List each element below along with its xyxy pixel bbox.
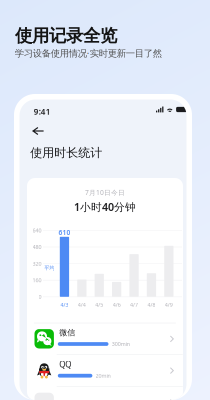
staticText: 160 bbox=[32, 277, 41, 284]
staticText: 610 bbox=[58, 228, 70, 237]
staticText: 4/6 bbox=[113, 301, 121, 308]
staticText: 学习设备使用情况·实时更新一目了然 bbox=[15, 47, 162, 59]
staticText: 4/8 bbox=[147, 301, 155, 308]
staticText: 4/5 bbox=[95, 301, 103, 308]
staticText: 使用记录全览 bbox=[15, 25, 117, 46]
button[interactable]: 返回 bbox=[27, 122, 49, 140]
staticText: 4/7 bbox=[130, 301, 138, 308]
staticText: 7月10日今日 bbox=[85, 188, 125, 197]
staticText: QQ bbox=[59, 359, 71, 370]
button[interactable] bbox=[27, 387, 183, 400]
staticText: 320 bbox=[32, 260, 41, 267]
button[interactable]: 微信 bbox=[27, 323, 183, 355]
staticText: 4/4 bbox=[78, 301, 86, 308]
staticText: 300min bbox=[112, 340, 130, 347]
staticText: 640 bbox=[32, 227, 41, 234]
button[interactable]: QQ bbox=[27, 355, 183, 386]
staticText: 4/3 bbox=[60, 301, 68, 308]
staticText: 微信 bbox=[59, 328, 75, 337]
staticText: 480 bbox=[32, 243, 41, 251]
staticText: 20min bbox=[96, 372, 111, 379]
staticText: 0 bbox=[38, 293, 41, 300]
staticText: 1小时40分钟 bbox=[74, 200, 136, 214]
staticText: 平均 bbox=[44, 265, 54, 271]
staticText: 9:41 bbox=[34, 106, 51, 117]
staticText: 4/9 bbox=[165, 301, 173, 308]
staticText: 使用时长统计 bbox=[30, 145, 102, 160]
